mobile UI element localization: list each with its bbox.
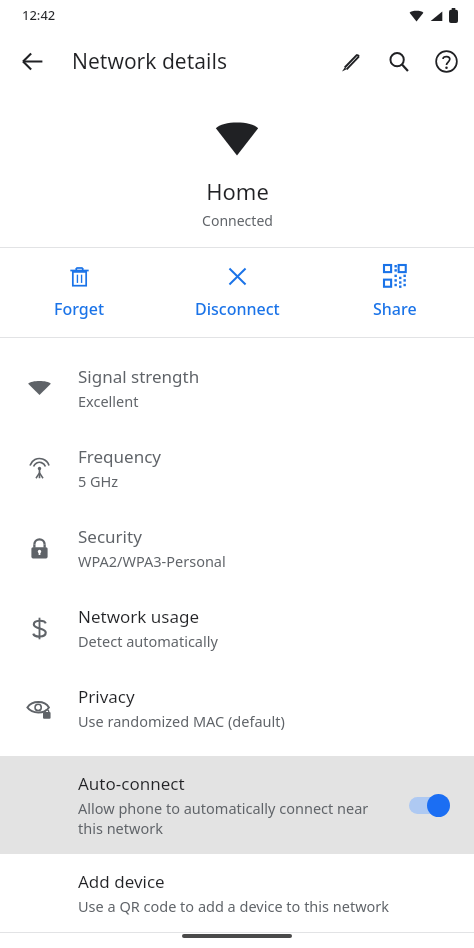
staticText: Share <box>373 298 417 320</box>
button[interactable]: Network usage <box>0 588 474 668</box>
button[interactable]: Add device <box>0 854 474 932</box>
button[interactable]: Security <box>0 508 474 588</box>
staticText: Home <box>206 176 269 206</box>
staticText: Disconnect <box>195 298 280 320</box>
staticText: Allow phone to automatically connect nea… <box>78 798 396 838</box>
staticText: Frequency <box>78 445 161 468</box>
staticText: Use a QR code to add a device to this ne… <box>78 896 390 916</box>
button[interactable]: Back <box>8 37 56 85</box>
staticText: 5 GHz <box>78 471 119 491</box>
button[interactable]: Forget <box>0 248 158 337</box>
button[interactable]: Disconnect <box>158 248 316 337</box>
button[interactable]: Signal strength <box>0 348 474 428</box>
staticText: WPA2/WPA3-Personal <box>78 551 226 571</box>
staticText: Network details <box>72 47 227 76</box>
button[interactable]: Auto-connect <box>406 787 458 823</box>
button[interactable]: Privacy <box>0 668 474 748</box>
button[interactable]: Search <box>374 37 422 85</box>
staticText: Signal strength <box>78 365 200 388</box>
button[interactable]: Frequency <box>0 428 474 508</box>
staticText: Add device <box>78 870 165 893</box>
staticText: Detect automatically <box>78 631 218 651</box>
button[interactable]: Edit <box>326 37 374 85</box>
staticText: Security <box>78 525 142 548</box>
button[interactable]: Help <box>422 37 470 85</box>
button[interactable]: Share <box>316 248 474 337</box>
button[interactable]: Auto-connect <box>0 756 474 854</box>
staticText: 12:42 <box>22 6 56 24</box>
staticText: Forget <box>54 298 105 320</box>
staticText: Network usage <box>78 605 200 628</box>
staticText: Use randomized MAC (default) <box>78 711 285 731</box>
staticText: Auto-connect <box>78 772 185 795</box>
staticText: Excellent <box>78 391 139 411</box>
staticText: Privacy <box>78 685 135 708</box>
staticText: Connected <box>202 211 273 230</box>
